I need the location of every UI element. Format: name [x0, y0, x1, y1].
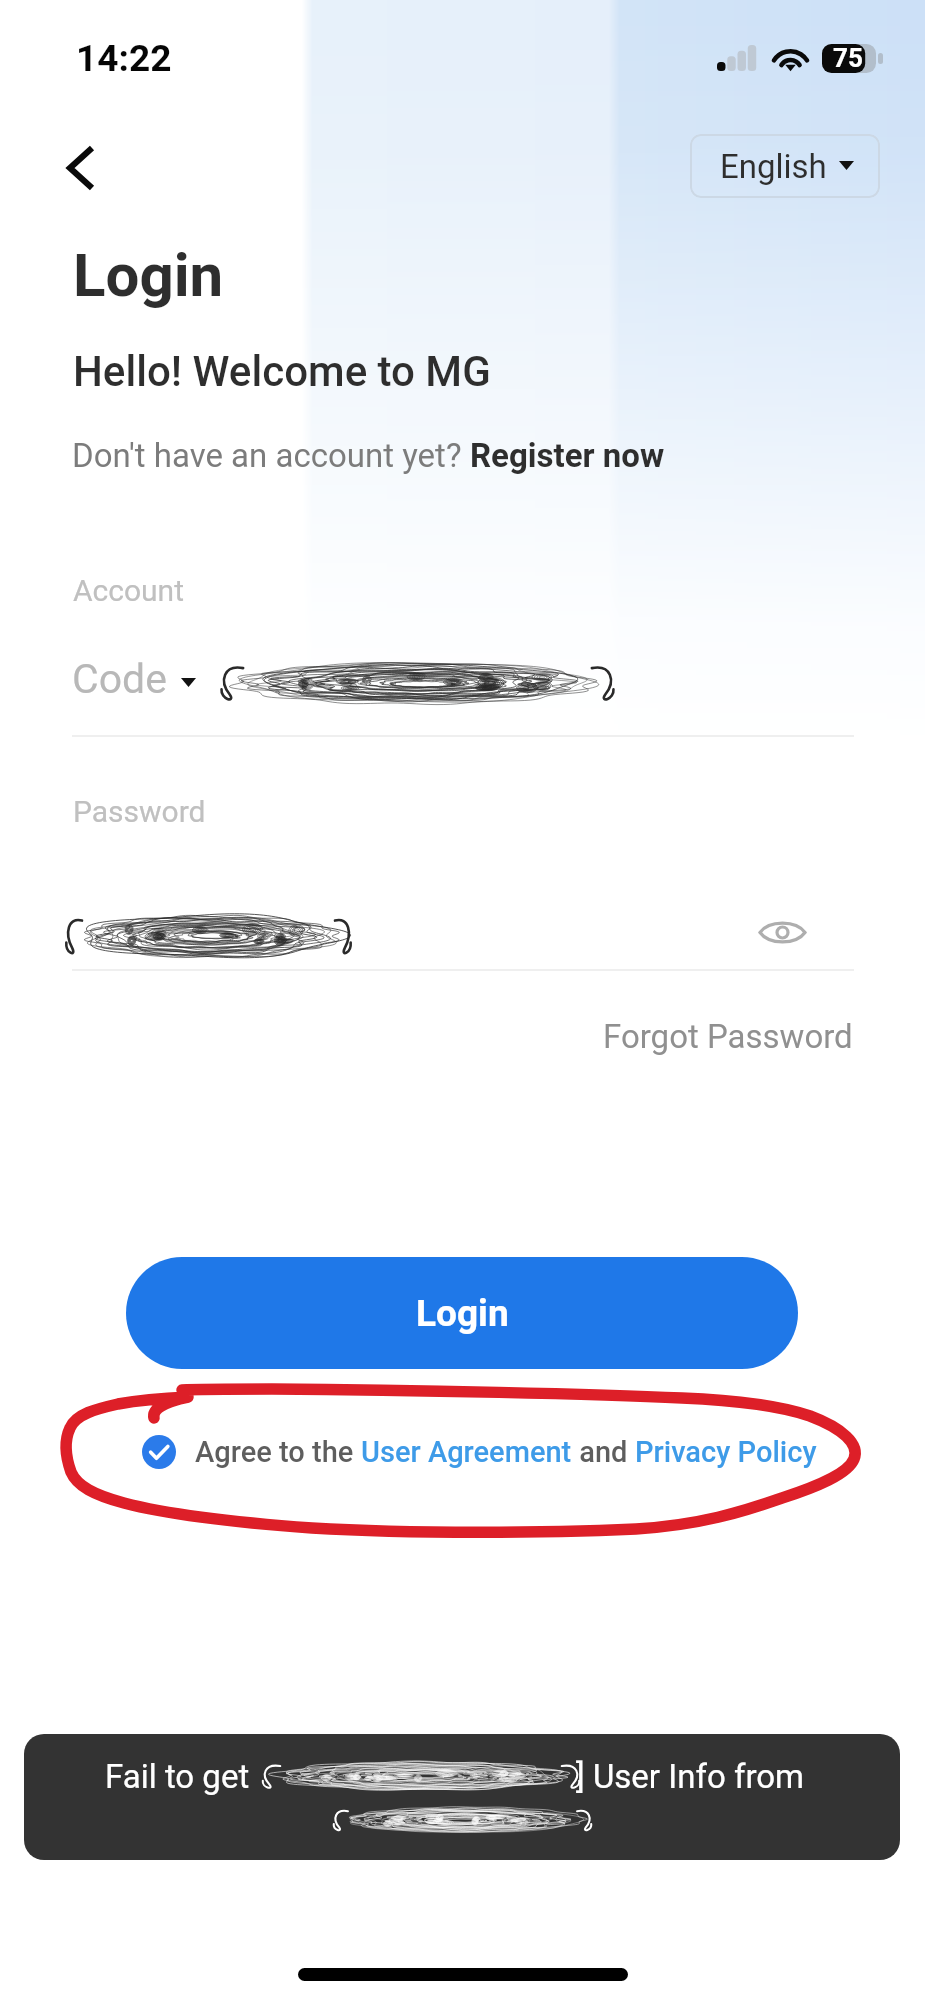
button[interactable]: Back: [50, 134, 114, 202]
button[interactable]: Register now: [470, 436, 665, 475]
staticText: English: [720, 147, 827, 186]
staticText: Account: [73, 573, 185, 608]
staticText: Hello! Welcome to MG: [73, 347, 491, 396]
button[interactable]: Password input: [72, 880, 732, 970]
button[interactable]: English: [690, 134, 880, 198]
staticText: Fail to get: [105, 1757, 250, 1796]
staticText: ] User Info from: [576, 1757, 805, 1796]
button[interactable]: User Agreement: [361, 1435, 572, 1469]
staticText: and: [572, 1435, 635, 1469]
staticText: Don't have an account yet?: [72, 436, 470, 475]
staticText: Login: [73, 240, 224, 310]
button[interactable]: Forgot Password: [603, 1017, 853, 1056]
staticText: Login: [416, 1292, 509, 1335]
button[interactable]: Agree to the: [142, 1430, 817, 1474]
staticText: Code: [72, 655, 167, 703]
button[interactable]: Show password: [752, 902, 812, 962]
button[interactable]: Login: [126, 1257, 798, 1369]
staticText: 75: [833, 43, 863, 72]
button[interactable]: Privacy Policy: [635, 1435, 817, 1469]
staticText: Password: [73, 794, 206, 829]
staticText: 14:22: [76, 37, 172, 80]
staticText: Agree to the: [195, 1435, 361, 1469]
button[interactable]: Code: [72, 655, 196, 703]
button[interactable]: Account input: [72, 640, 854, 736]
